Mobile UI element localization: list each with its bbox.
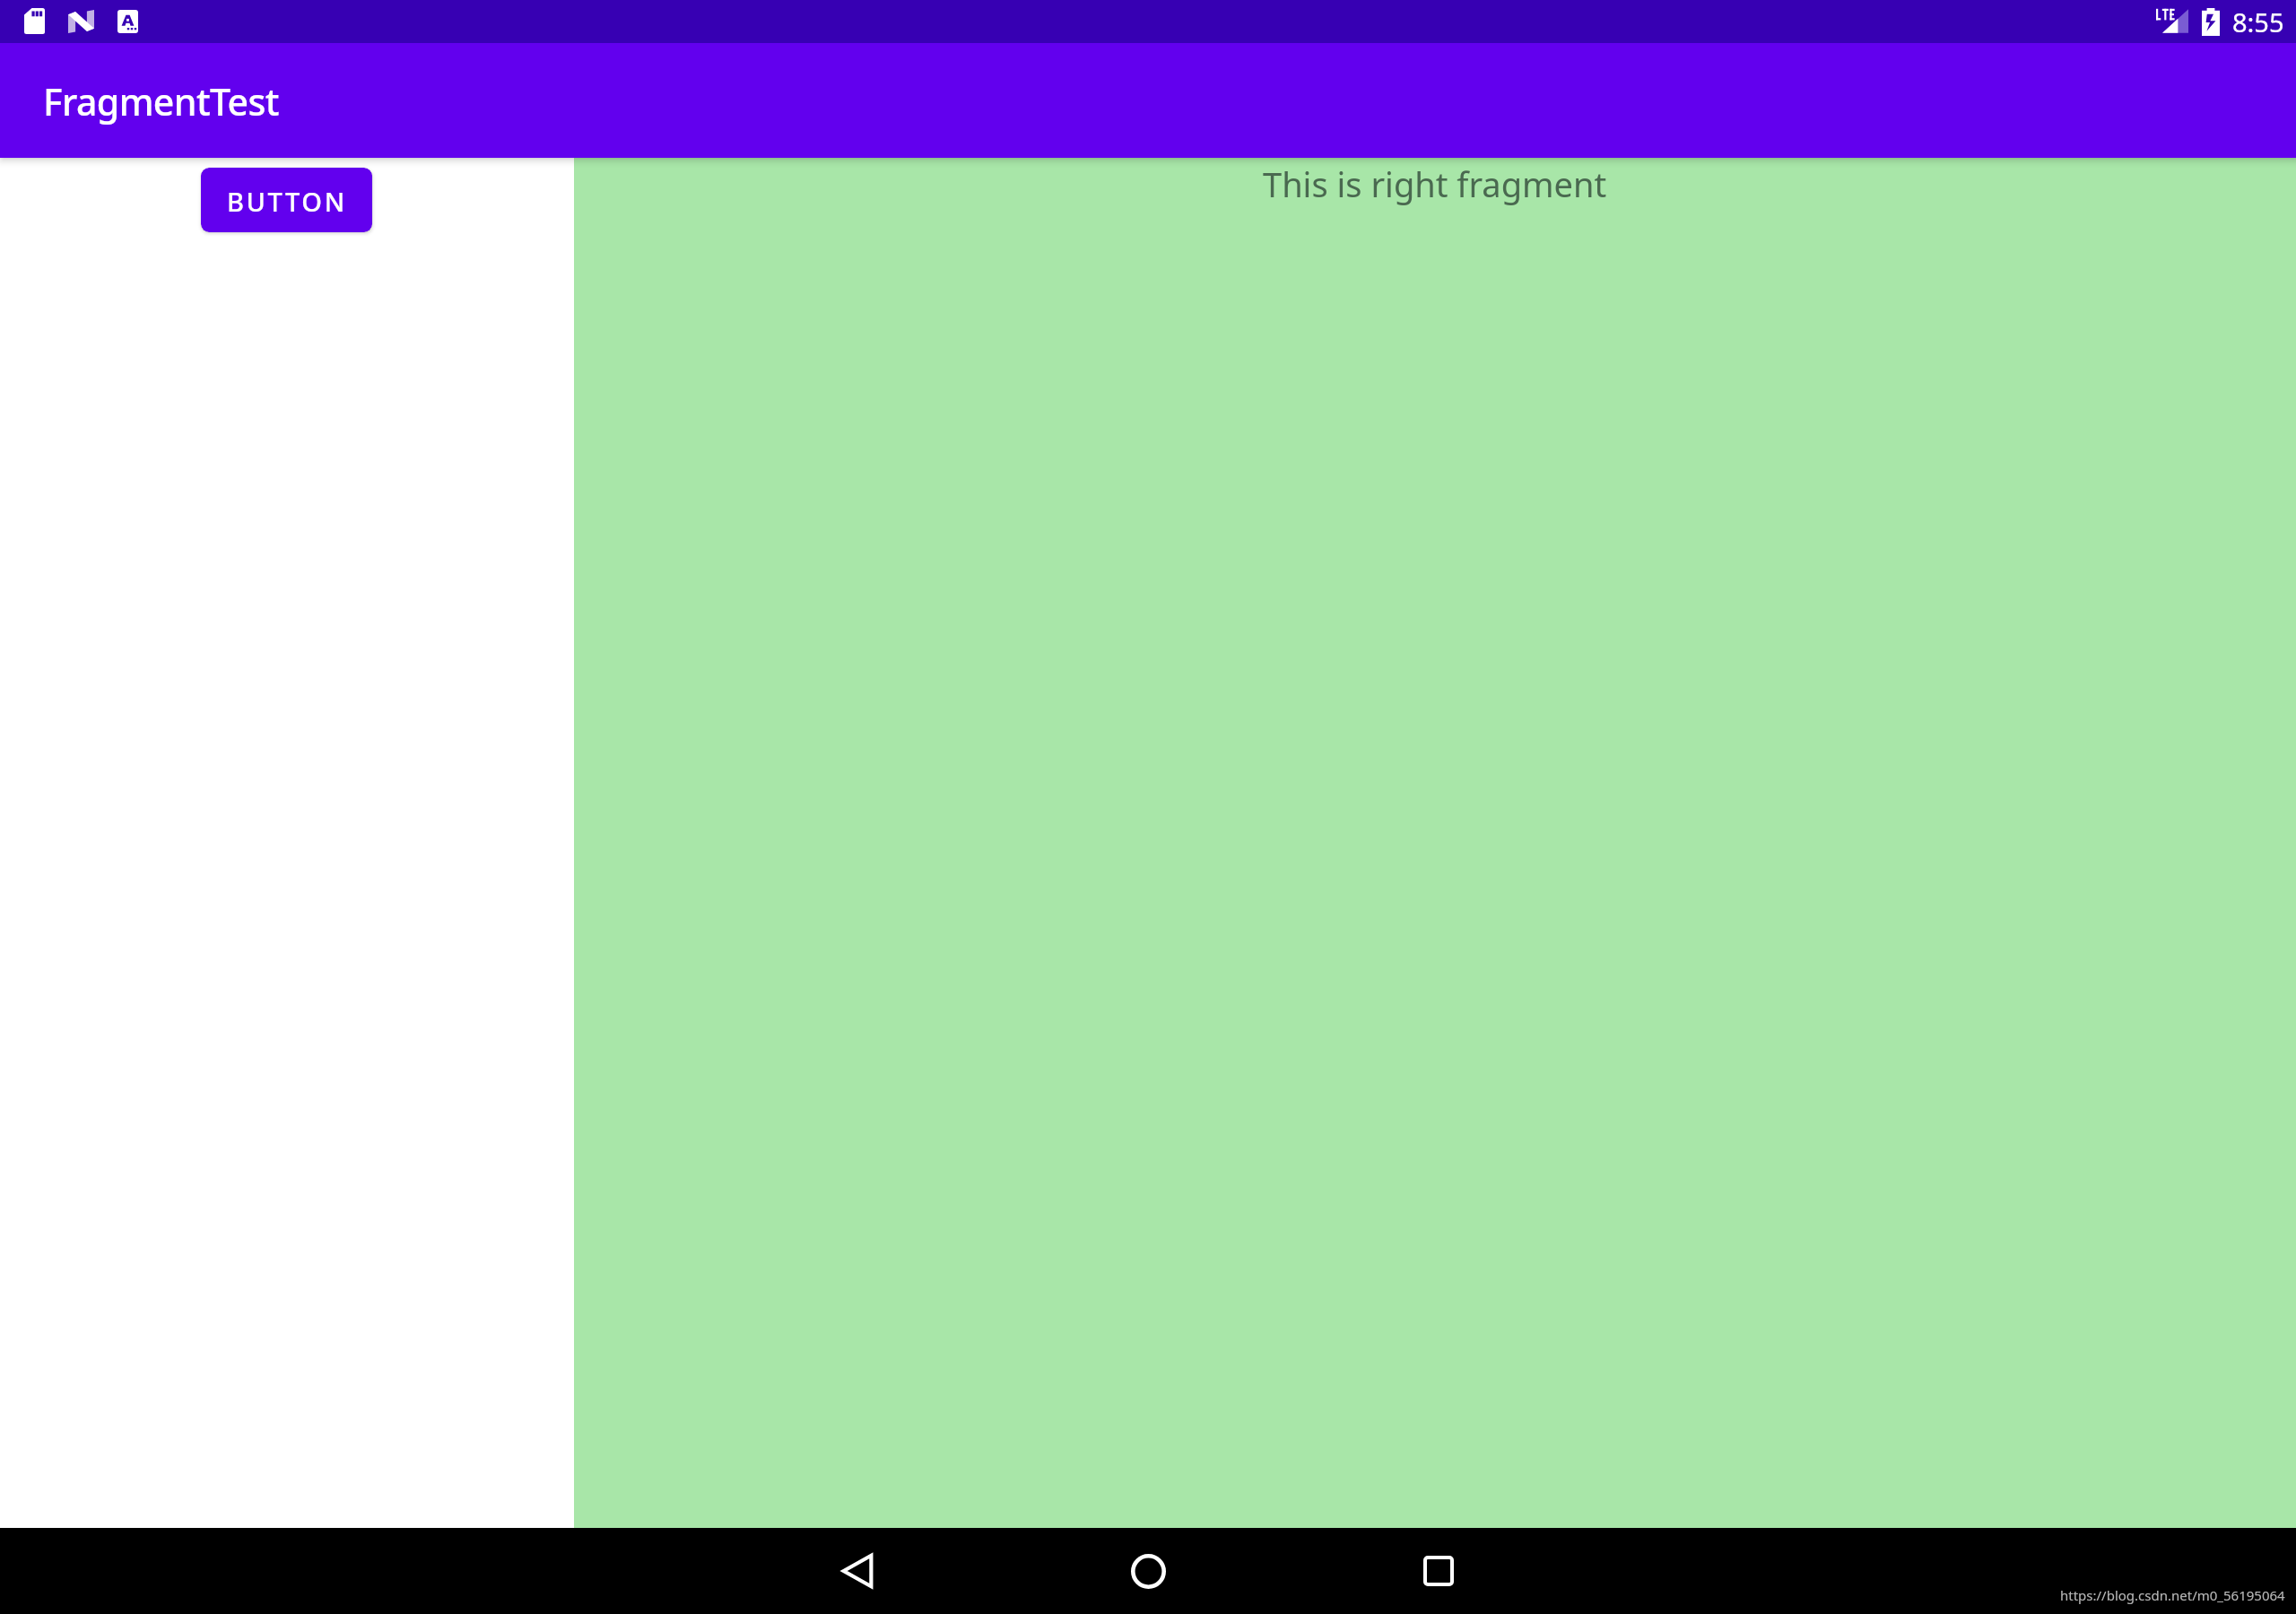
staticText: This is right fragment	[1263, 161, 1607, 207]
button[interactable]: BUTTON	[201, 168, 372, 232]
staticText: https://blog.csdn.net/m0_56195064	[2060, 1586, 2285, 1604]
button[interactable]: Recents	[1396, 1528, 1482, 1614]
staticText: BUTTON	[227, 184, 347, 219]
staticText: FragmentTest	[43, 76, 279, 126]
button[interactable]: Home	[1105, 1528, 1191, 1614]
staticText: 8:55	[2232, 4, 2284, 39]
button[interactable]: Back	[814, 1528, 900, 1614]
